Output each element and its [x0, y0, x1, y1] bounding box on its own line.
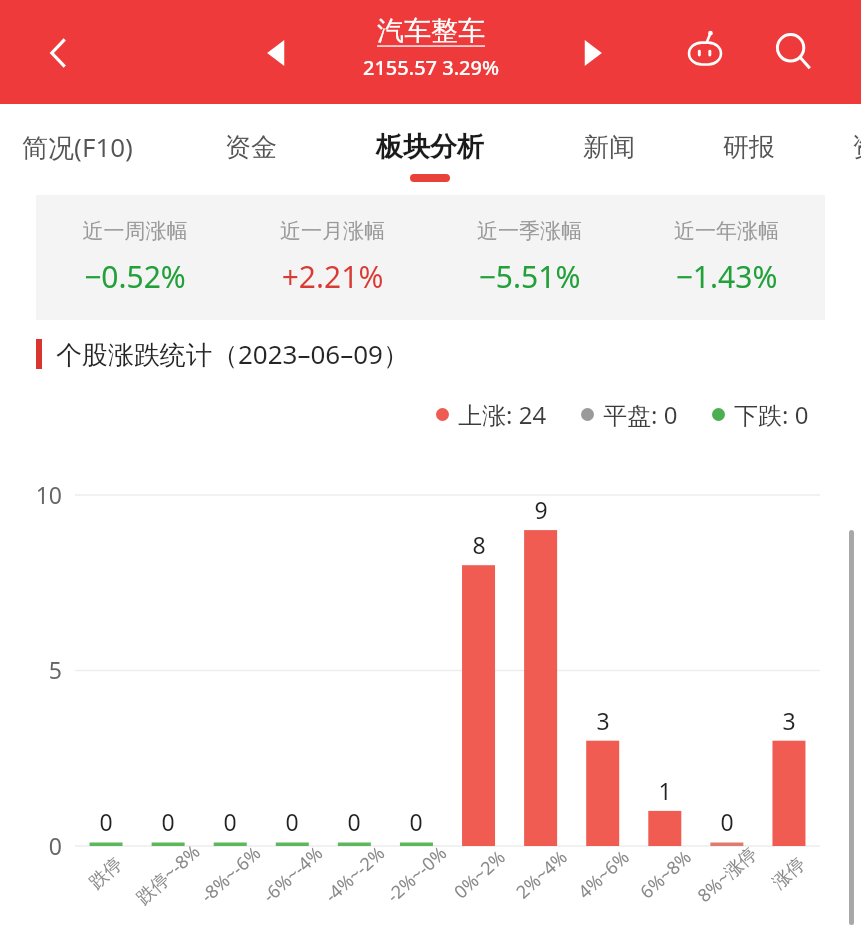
staticText: 8%~涨停 [692, 841, 762, 908]
staticText: 0 [720, 806, 734, 837]
staticText: 平盘: 0 [603, 398, 678, 431]
staticText: 上涨: 24 [458, 398, 547, 431]
staticText: 0 [223, 806, 237, 837]
staticText: 2%~4% [510, 845, 573, 904]
staticText: 0 [347, 806, 361, 837]
button[interactable]: 新闻 [566, 104, 652, 190]
staticText: 跌停~-8% [131, 839, 205, 910]
button[interactable]: 下跌: 0 [712, 398, 809, 431]
staticText: 0 [99, 806, 113, 837]
staticText: +2.21% [234, 256, 431, 297]
button[interactable]: 近一年涨幅 [628, 218, 825, 297]
button[interactable]: Previous sector [248, 24, 306, 82]
staticText: 8 [472, 529, 486, 560]
button[interactable]: 汽车整车 [306, 14, 556, 81]
staticText: 0%~2% [448, 845, 511, 904]
staticText: −5.51% [431, 256, 628, 297]
staticText: 资金 [225, 131, 277, 164]
staticText: 汽车整车 [306, 14, 556, 48]
staticText: 0 [161, 806, 175, 837]
staticText: 近一周涨幅 [36, 218, 234, 244]
button[interactable]: Back [28, 22, 90, 84]
staticText: 资 [852, 131, 861, 164]
button[interactable]: 简况(F10) [0, 104, 165, 190]
button[interactable]: 资 [845, 104, 861, 190]
button[interactable]: AI assistant [674, 20, 736, 82]
button[interactable]: Search [762, 20, 824, 82]
button[interactable]: Next sector [563, 24, 621, 82]
staticText: 3 [782, 705, 796, 736]
staticText: 3 [596, 705, 610, 736]
button[interactable]: 研报 [706, 104, 792, 190]
staticText: 个股涨跌统计（2023–06–09） [56, 336, 409, 372]
button[interactable]: 平盘: 0 [581, 398, 678, 431]
staticText: 9 [534, 494, 548, 525]
staticText: -6%~-4% [257, 841, 328, 908]
button[interactable]: 近一月涨幅 [234, 218, 431, 297]
staticText: 涨停 [768, 853, 810, 894]
staticText: 4%~6% [572, 845, 635, 904]
button[interactable]: 上涨: 24 [436, 398, 547, 431]
staticText: −1.43% [628, 256, 825, 297]
staticText: 板块分析 [376, 130, 484, 164]
button[interactable]: 近一周涨幅 [36, 218, 234, 297]
staticText: 跌停 [85, 853, 127, 894]
button[interactable]: 资金 [208, 104, 294, 190]
staticText: 0 [48, 830, 62, 861]
button[interactable]: 近一季涨幅 [431, 218, 628, 297]
staticText: 简况(F10) [22, 129, 133, 165]
staticText: −0.52% [36, 256, 234, 297]
staticText: 0 [409, 806, 423, 837]
staticText: 6%~8% [634, 845, 697, 904]
button[interactable]: 板块分析 [352, 104, 507, 190]
staticText: 1 [658, 775, 672, 806]
staticText: 新闻 [583, 131, 635, 164]
staticText: 近一月涨幅 [234, 218, 431, 244]
staticText: 近一年涨幅 [628, 218, 825, 244]
staticText: -4%~-2% [319, 841, 390, 908]
staticText: 2155.57 3.29% [306, 54, 556, 81]
staticText: 0 [285, 806, 299, 837]
staticText: -2%~-0% [381, 841, 452, 908]
staticText: 5 [48, 654, 62, 685]
staticText: 近一季涨幅 [431, 218, 628, 244]
staticText: 研报 [723, 131, 775, 164]
staticText: 下跌: 0 [734, 398, 809, 431]
staticText: -8%~-6% [195, 841, 266, 908]
staticText: 10 [35, 479, 62, 510]
